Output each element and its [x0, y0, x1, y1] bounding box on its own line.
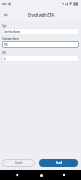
staticText: Cancel — [15, 161, 22, 165]
staticText: PXE — [4, 43, 8, 46]
staticText: Geo Fence Access — [4, 30, 20, 33]
staticText: Type — [2, 24, 7, 27]
staticText: Enroll — [56, 161, 62, 165]
button[interactable]: Recents — [57, 170, 71, 180]
staticText: Destination Name — [2, 37, 19, 40]
button[interactable]: Geo Fence Access — [2, 28, 79, 35]
button[interactable]: Back — [10, 170, 24, 180]
button[interactable]: PXE — [2, 41, 79, 48]
button[interactable]: h . — [2, 55, 79, 62]
staticText: URL — [2, 51, 6, 54]
staticText: h . — [4, 57, 6, 60]
button[interactable]: Cancel — [2, 159, 35, 167]
staticText: Enroll with ETA — [28, 12, 54, 18]
button[interactable]: Back — [0, 9, 11, 20]
button[interactable]: Home — [34, 170, 48, 180]
button[interactable]: Enroll — [39, 159, 78, 167]
